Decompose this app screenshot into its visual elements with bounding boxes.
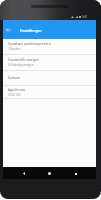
staticText: Zusatzstoffe anzeigen xyxy=(8,58,39,62)
staticText: Einstellungen xyxy=(20,28,42,32)
staticText: Gyroskope zwischenspeichern xyxy=(8,42,51,46)
button[interactable]: Gyroskope zwischenspeichern xyxy=(3,39,96,54)
button[interactable]: Lizenzen xyxy=(3,71,96,85)
button[interactable]: Back xyxy=(18,168,29,179)
staticText: Lizenzen xyxy=(8,76,21,80)
staticText: Vollständig anzeigen xyxy=(8,63,34,67)
button[interactable]: Recent apps xyxy=(70,168,81,179)
staticText: App-Version xyxy=(8,88,26,92)
staticText: 2 Stunden xyxy=(8,47,21,51)
staticText: 9:41 xyxy=(82,15,88,19)
button[interactable]: Back xyxy=(3,21,13,39)
button[interactable]: App-Version xyxy=(3,86,96,98)
button[interactable]: Home xyxy=(44,168,55,179)
button[interactable]: Zusatzstoffe anzeigen xyxy=(3,55,96,70)
staticText: 3.8 (4.106) xyxy=(8,93,21,97)
